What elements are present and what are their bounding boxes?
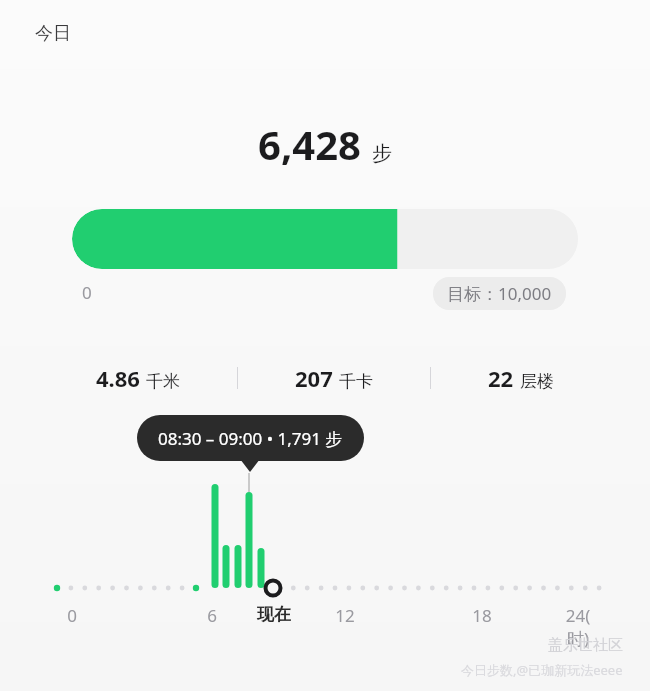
staticText: 盖乐世社区 bbox=[548, 636, 623, 655]
other: Hourly step chart bbox=[0, 465, 650, 600]
staticText: 层楼 bbox=[520, 371, 554, 392]
staticText: 22 bbox=[488, 363, 514, 393]
button[interactable]: 目标：10,000 bbox=[433, 277, 566, 310]
staticText: 步 bbox=[372, 141, 392, 166]
button[interactable]: 22 bbox=[484, 360, 558, 396]
staticText: 18 bbox=[462, 604, 502, 627]
staticText: 08:30 – 09:00 • 1,791 步 bbox=[158, 427, 343, 450]
button[interactable]: 今日 bbox=[32, 19, 74, 48]
staticText: 0 bbox=[82, 281, 92, 304]
staticText: 千卡 bbox=[339, 371, 373, 392]
staticText: 12 bbox=[325, 604, 365, 627]
button[interactable]: 4.86 bbox=[92, 360, 184, 396]
staticText: 目标：10,000 bbox=[447, 282, 552, 305]
staticText: 今日 bbox=[35, 22, 71, 45]
staticText: 6,428 bbox=[258, 117, 361, 171]
staticText: 0 bbox=[52, 604, 92, 627]
button[interactable]: 08:30 – 09:00 • 1,791 步 bbox=[137, 415, 364, 461]
staticText: 207 bbox=[295, 363, 333, 393]
staticText: 千米 bbox=[146, 371, 180, 392]
button[interactable] bbox=[72, 209, 578, 269]
staticText: 今日步数,@已珈新玩法eeee bbox=[461, 661, 623, 679]
button[interactable]: 207 bbox=[291, 360, 377, 396]
staticText: 24(时) bbox=[558, 604, 598, 650]
staticText: 现在 bbox=[254, 604, 294, 625]
staticText: 6 bbox=[192, 604, 232, 627]
staticText: 4.86 bbox=[96, 363, 140, 393]
